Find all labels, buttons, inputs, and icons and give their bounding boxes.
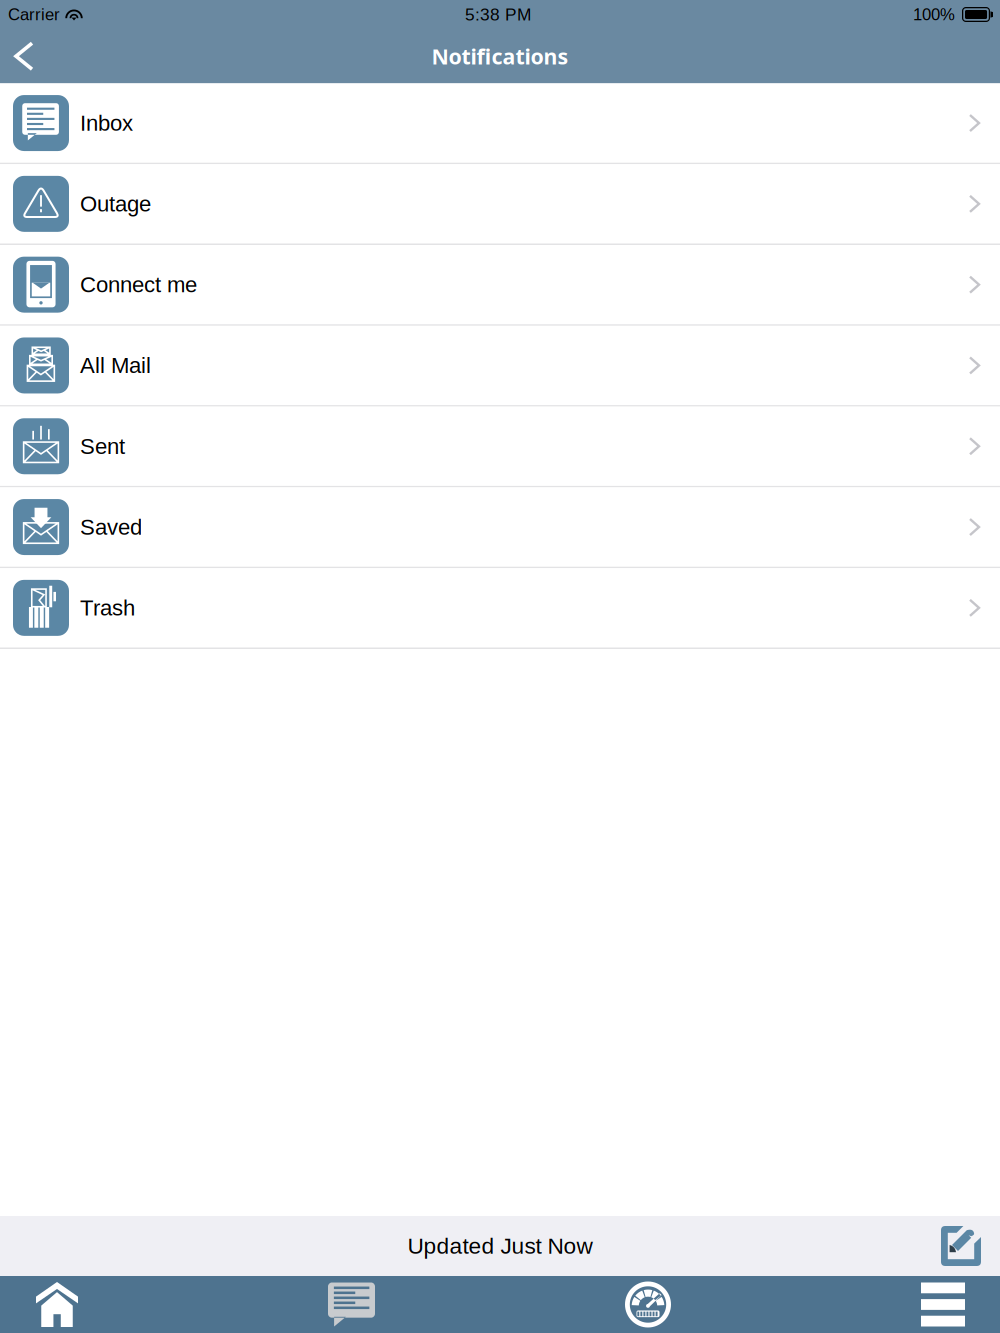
staticText: Inbox	[80, 111, 133, 135]
staticText: Updated Just Now	[407, 1233, 592, 1259]
staticText: Sent	[80, 434, 125, 459]
button[interactable]: Sent	[0, 407, 1000, 487]
button[interactable]: Connect me	[0, 245, 1000, 326]
button[interactable]: All Mail	[0, 326, 1000, 407]
staticText: Saved	[80, 515, 142, 539]
button[interactable]: Usage	[625, 1276, 671, 1333]
staticText: Carrier	[8, 5, 60, 24]
button[interactable]: Compose	[927, 1216, 1000, 1276]
button[interactable]: Trash	[0, 568, 1000, 649]
button[interactable]: Back	[0, 29, 58, 83]
button[interactable]: Home	[36, 1276, 78, 1333]
button[interactable]: Saved	[0, 487, 1000, 568]
staticText: Notifications	[431, 42, 568, 71]
staticText: Outage	[80, 191, 151, 216]
button[interactable]: Outage	[0, 164, 1000, 245]
staticText: 100%	[913, 5, 955, 24]
staticText: 5:38 PM	[465, 5, 531, 24]
button[interactable]: Messages	[328, 1276, 375, 1333]
staticText: Connect me	[80, 272, 197, 297]
staticText: Trash	[80, 595, 135, 620]
button[interactable]: More	[921, 1276, 965, 1333]
button[interactable]: Inbox	[0, 83, 1000, 164]
staticText: All Mail	[80, 353, 151, 378]
